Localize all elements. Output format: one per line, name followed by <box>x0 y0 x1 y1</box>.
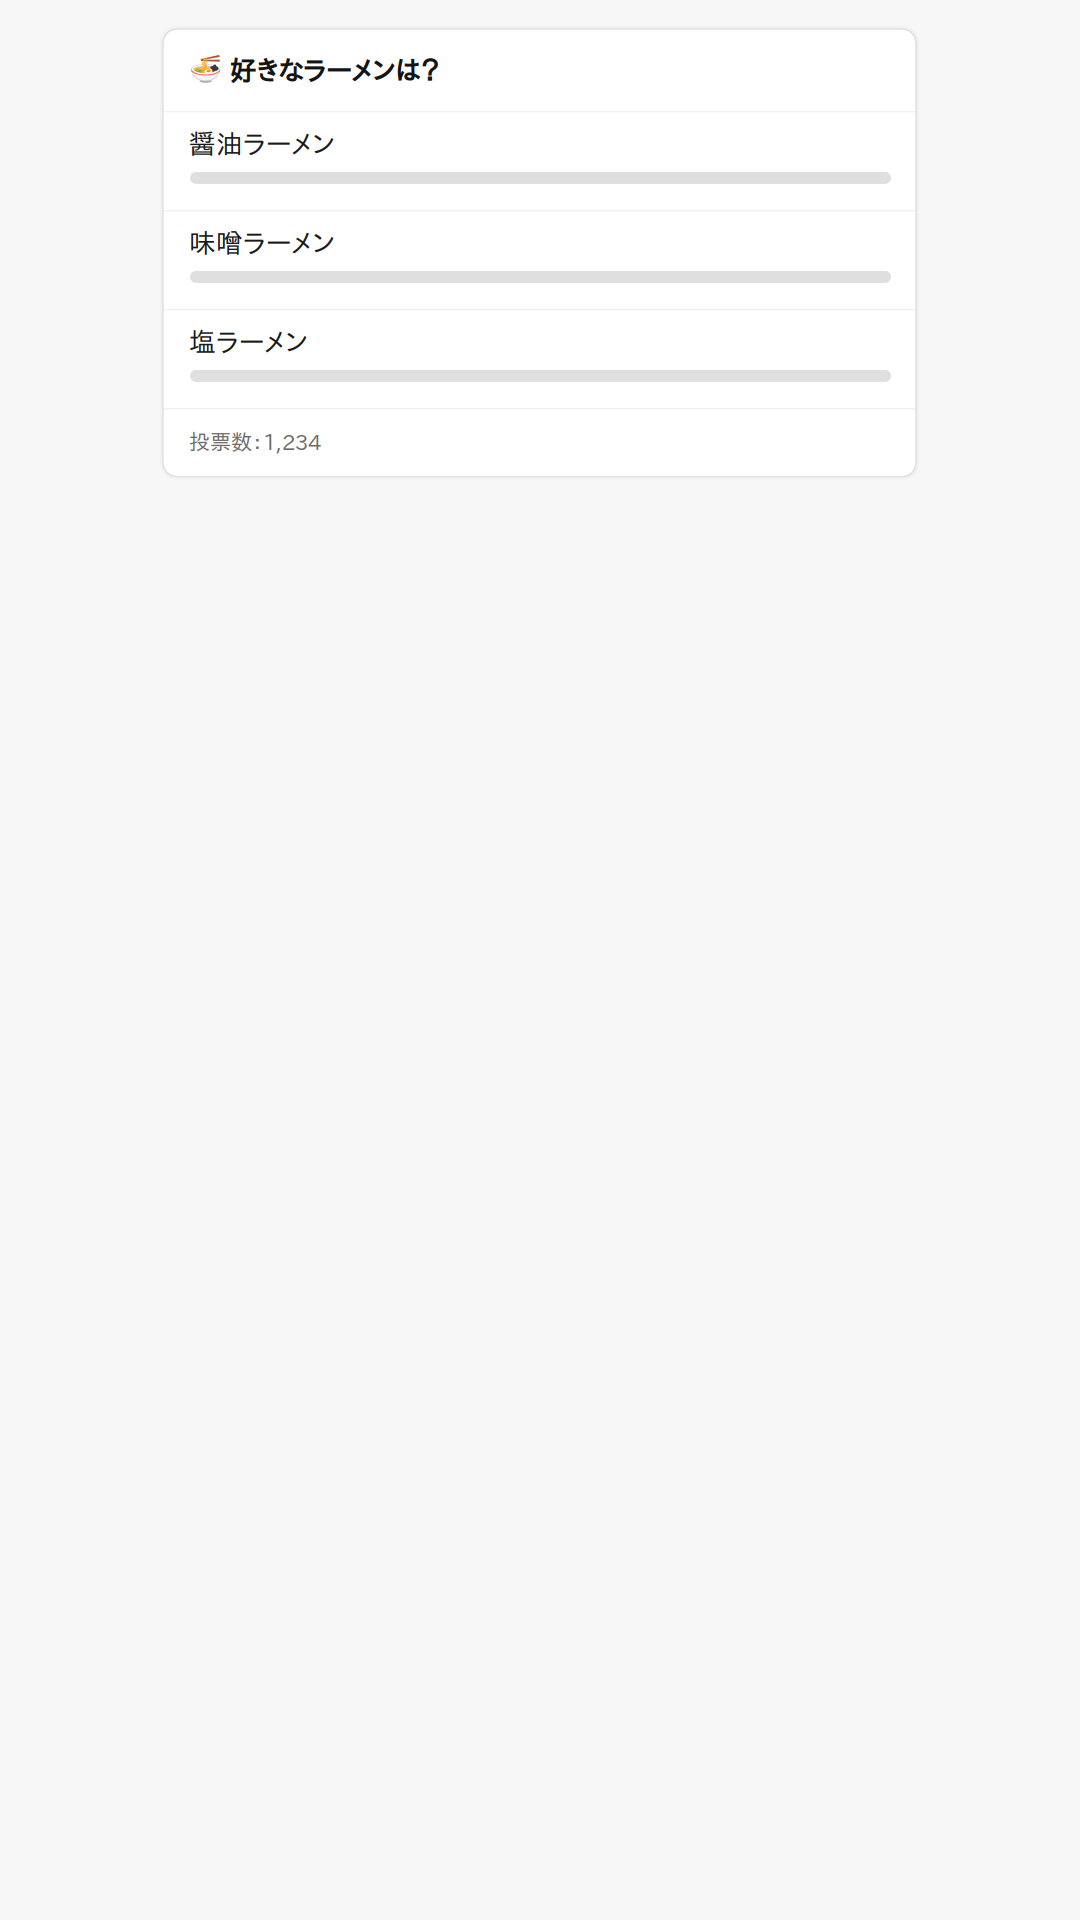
button[interactable]: 塩ラーメン <box>163 310 916 408</box>
staticText: 塩ラーメン <box>189 328 308 355</box>
button[interactable]: 醤油ラーメン <box>163 112 916 210</box>
staticText: 🍜 好きなラーメンは？ <box>189 53 439 84</box>
button[interactable]: 味噌ラーメン <box>163 211 916 309</box>
staticText: 醤油ラーメン <box>189 130 335 157</box>
staticText: 投票数：1,234 <box>189 431 321 453</box>
staticText: 味噌ラーメン <box>189 229 335 256</box>
